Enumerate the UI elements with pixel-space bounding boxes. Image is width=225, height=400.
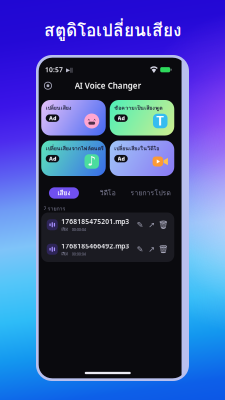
button[interactable]: รายการโปรด [131,187,171,199]
staticText: T [156,111,164,129]
staticText: 🗑 [158,245,168,254]
staticText: ✎ [137,245,144,254]
staticText: สตูดิโอเปลี่ยนเสียง [44,17,181,43]
staticText: ข้อความเป็นเสียงพูด [114,104,162,112]
staticText: วิดีโอ [100,188,116,198]
staticText: Ad [49,155,56,162]
button[interactable]: Rename [136,218,145,231]
staticText: ↗ [148,220,155,229]
staticText: 🗑 [158,220,168,229]
button[interactable]: ข้อความเป็นเสียงพูด [110,100,174,135]
staticText: เสียง [61,226,68,232]
button[interactable]: Delete [159,243,168,256]
staticText: 2 รายการ [43,204,65,213]
button[interactable]: วิดีโอ [95,187,121,199]
staticText: เปลี่ยนเสียงจากไฟล์ดนตรี [46,144,104,153]
staticText: เปลี่ยนเสียง [46,104,72,112]
staticText: เสียง [61,251,68,257]
button[interactable]: เปลี่ยนเสียงจากไฟล์ดนตรี [41,140,106,176]
staticText: AI Voice Changer [75,80,141,91]
button[interactable]: 1768185475201.mp3 [41,212,174,237]
staticText: Ad [49,115,56,122]
staticText: เสียง [57,188,70,198]
button[interactable]: เปลี่ยนเสียง [41,100,106,135]
staticText: ↗ [148,245,155,254]
button[interactable]: 1768185466492.mp3 [41,237,174,261]
button[interactable]: เสียง [49,187,79,199]
staticText: เปลี่ยนเสียงในวิดีโอ [114,144,159,153]
staticText: 10:57 [45,65,63,74]
button[interactable]: เปลี่ยนเสียงในวิดีโอ [110,140,174,176]
staticText: 1768185466492.mp3 [61,241,129,250]
staticText: Ad [117,155,124,162]
staticText: ✎ [137,220,144,229]
button[interactable]: Share [147,218,156,231]
staticText: 00:00:04 [72,227,86,232]
button[interactable]: Rename [136,243,145,256]
staticText: 00:00:04 [72,251,86,256]
staticText: ▶‖ [66,66,73,73]
button[interactable]: Share [147,243,156,256]
button[interactable]: Settings [40,78,56,94]
staticText: รายการโปรด [131,188,171,198]
staticText: ♪ [87,153,96,168]
button[interactable]: Delete [159,218,168,231]
staticText: Ad [117,115,124,122]
staticText: 1768185475201.mp3 [61,217,129,226]
